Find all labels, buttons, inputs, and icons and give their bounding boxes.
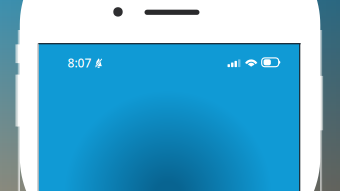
staticText: 8:07: [68, 55, 92, 71]
